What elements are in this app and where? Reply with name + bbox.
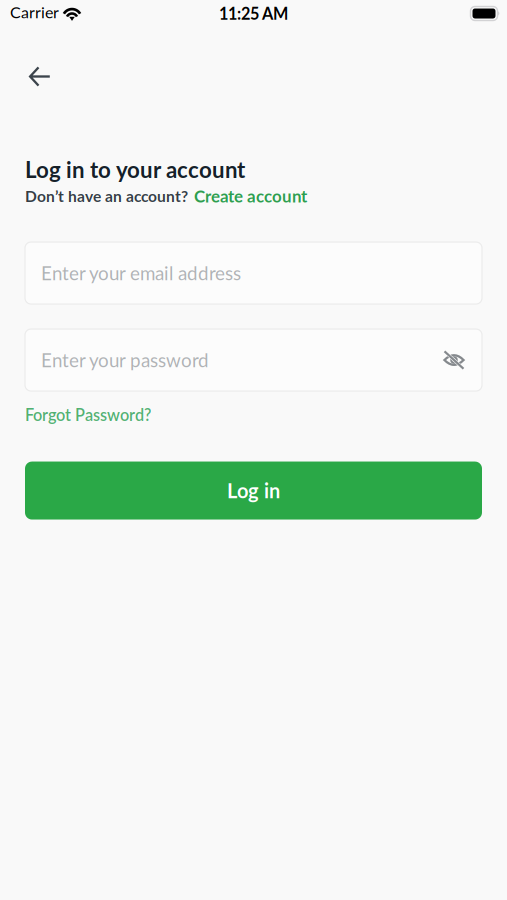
staticText: Don’t have an account? — [25, 186, 188, 205]
button[interactable]: Forgot Password? — [25, 397, 159, 432]
staticText: Enter your email address — [41, 262, 241, 284]
staticText: Forgot Password? — [25, 405, 151, 424]
button[interactable]: Log in — [25, 462, 482, 520]
staticText: Enter your password — [41, 349, 209, 371]
button[interactable]: Create account — [194, 180, 307, 212]
staticText: 11:25 AM — [219, 4, 288, 23]
button[interactable]: Enter your email address — [25, 242, 482, 304]
button[interactable]: Show password — [440, 348, 468, 372]
button[interactable]: Back — [15, 52, 65, 101]
button[interactable]: Enter your password — [25, 329, 482, 391]
staticText: Log in — [227, 479, 280, 503]
staticText: Create account — [194, 186, 307, 206]
staticText: Log in to your account — [25, 156, 245, 183]
staticText: Carrier — [10, 2, 59, 22]
